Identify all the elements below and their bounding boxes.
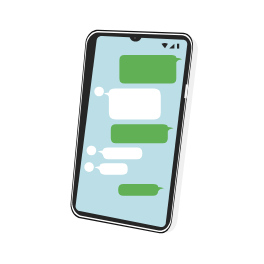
button[interactable]: Messaging conversation illustration <box>0 0 264 264</box>
